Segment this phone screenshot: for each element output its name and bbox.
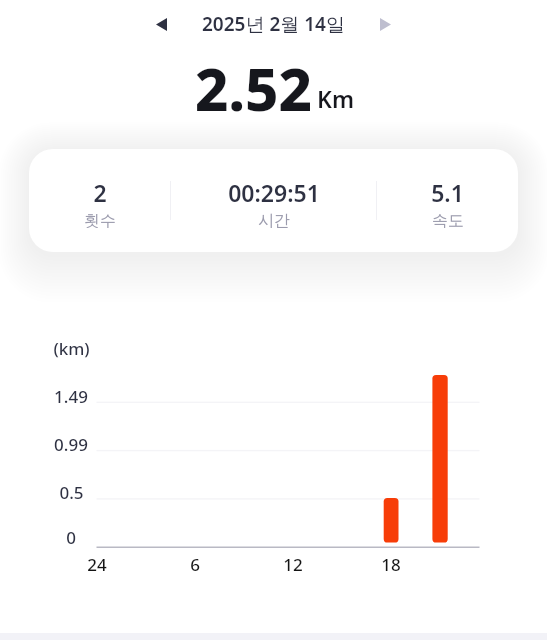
staticText: 18 bbox=[381, 553, 401, 576]
staticText: 시간 bbox=[258, 211, 290, 231]
staticText: 0 bbox=[66, 526, 76, 549]
staticText: 00:29:51 bbox=[228, 177, 320, 208]
staticText: 5.1 bbox=[431, 177, 464, 208]
staticText: 12 bbox=[283, 553, 303, 576]
staticText: 0.5 bbox=[59, 481, 84, 504]
staticText: 1.49 bbox=[54, 385, 88, 408]
staticText: 24 bbox=[87, 553, 107, 576]
staticText: (km) bbox=[53, 337, 90, 360]
staticText: 6 bbox=[190, 553, 200, 576]
button[interactable]: Next day bbox=[345, 7, 391, 41]
staticText: 2.52 bbox=[195, 49, 313, 128]
button[interactable]: Previous day bbox=[156, 7, 202, 41]
staticText: 2025년 2월 14일 bbox=[202, 11, 345, 37]
staticText: 횟수 bbox=[84, 211, 116, 231]
staticText: 2 bbox=[93, 177, 107, 208]
staticText: 속도 bbox=[432, 211, 464, 231]
staticText: 0.99 bbox=[54, 433, 88, 456]
staticText: Km bbox=[317, 83, 354, 114]
